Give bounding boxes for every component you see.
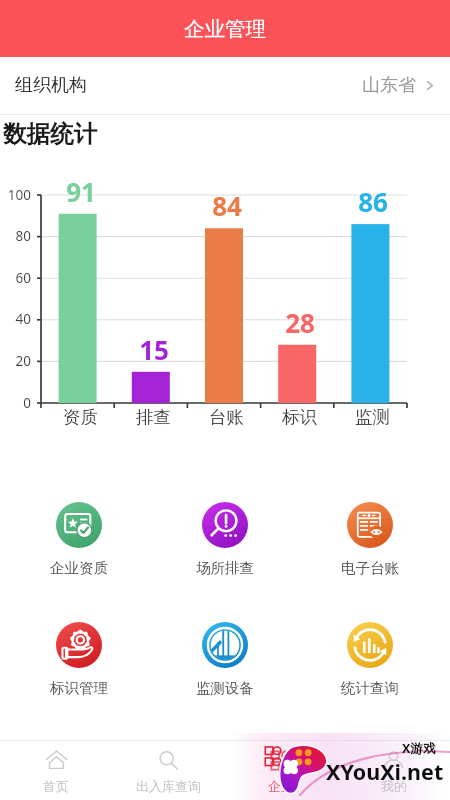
staticText: 数据统计 bbox=[3, 119, 97, 149]
staticText: 台账 bbox=[209, 406, 244, 428]
staticText: 首页 bbox=[43, 778, 69, 794]
staticText: 60 bbox=[15, 269, 31, 287]
staticText: 100 bbox=[7, 186, 31, 204]
button[interactable]: 统计查询 bbox=[297, 622, 442, 697]
staticText: 40 bbox=[15, 310, 31, 328]
staticText: 0 bbox=[23, 394, 31, 412]
staticText: 84 bbox=[212, 188, 242, 223]
staticText: 电子台账 bbox=[341, 559, 399, 577]
staticText: 统计查询 bbox=[341, 679, 399, 697]
staticText: X游戏 bbox=[402, 740, 436, 757]
staticText: 监测 bbox=[355, 406, 390, 428]
staticText: 监测设备 bbox=[196, 679, 254, 697]
staticText: 28 bbox=[285, 305, 315, 340]
staticText: 排查 bbox=[136, 406, 171, 428]
button[interactable]: 监测设备 bbox=[152, 622, 297, 697]
staticText: 标识 bbox=[282, 406, 317, 428]
staticText: 20 bbox=[15, 352, 31, 370]
button[interactable]: 场所排查 bbox=[152, 502, 297, 577]
button[interactable]: Inventory query bbox=[112, 748, 224, 794]
button[interactable]: 电子台账 bbox=[297, 502, 442, 577]
button[interactable]: 企业资质 bbox=[6, 502, 152, 577]
staticText: 86 bbox=[358, 184, 388, 219]
staticText: 80 bbox=[15, 227, 31, 245]
staticText: 山东省 bbox=[362, 74, 416, 97]
staticText: 场所排查 bbox=[196, 559, 254, 577]
staticText: 企业 bbox=[268, 778, 294, 794]
staticText: 91 bbox=[66, 174, 96, 209]
button[interactable]: 组织机构 bbox=[0, 57, 450, 114]
staticText: 组织机构 bbox=[15, 74, 87, 97]
button[interactable]: Home bbox=[0, 748, 112, 794]
staticText: 企业管理 bbox=[184, 16, 266, 42]
staticText: 资质 bbox=[63, 406, 98, 428]
staticText: 15 bbox=[139, 332, 169, 367]
staticText: 我的 bbox=[381, 778, 407, 794]
staticText: 出入库查询 bbox=[136, 778, 201, 794]
button[interactable]: 标识管理 bbox=[6, 622, 152, 697]
button[interactable]: Profile bbox=[337, 748, 450, 794]
button[interactable]: Enterprise bbox=[224, 748, 337, 794]
staticText: 标识管理 bbox=[50, 679, 108, 697]
staticText: XYouXi.net bbox=[326, 757, 444, 786]
staticText: 企业资质 bbox=[50, 559, 108, 577]
